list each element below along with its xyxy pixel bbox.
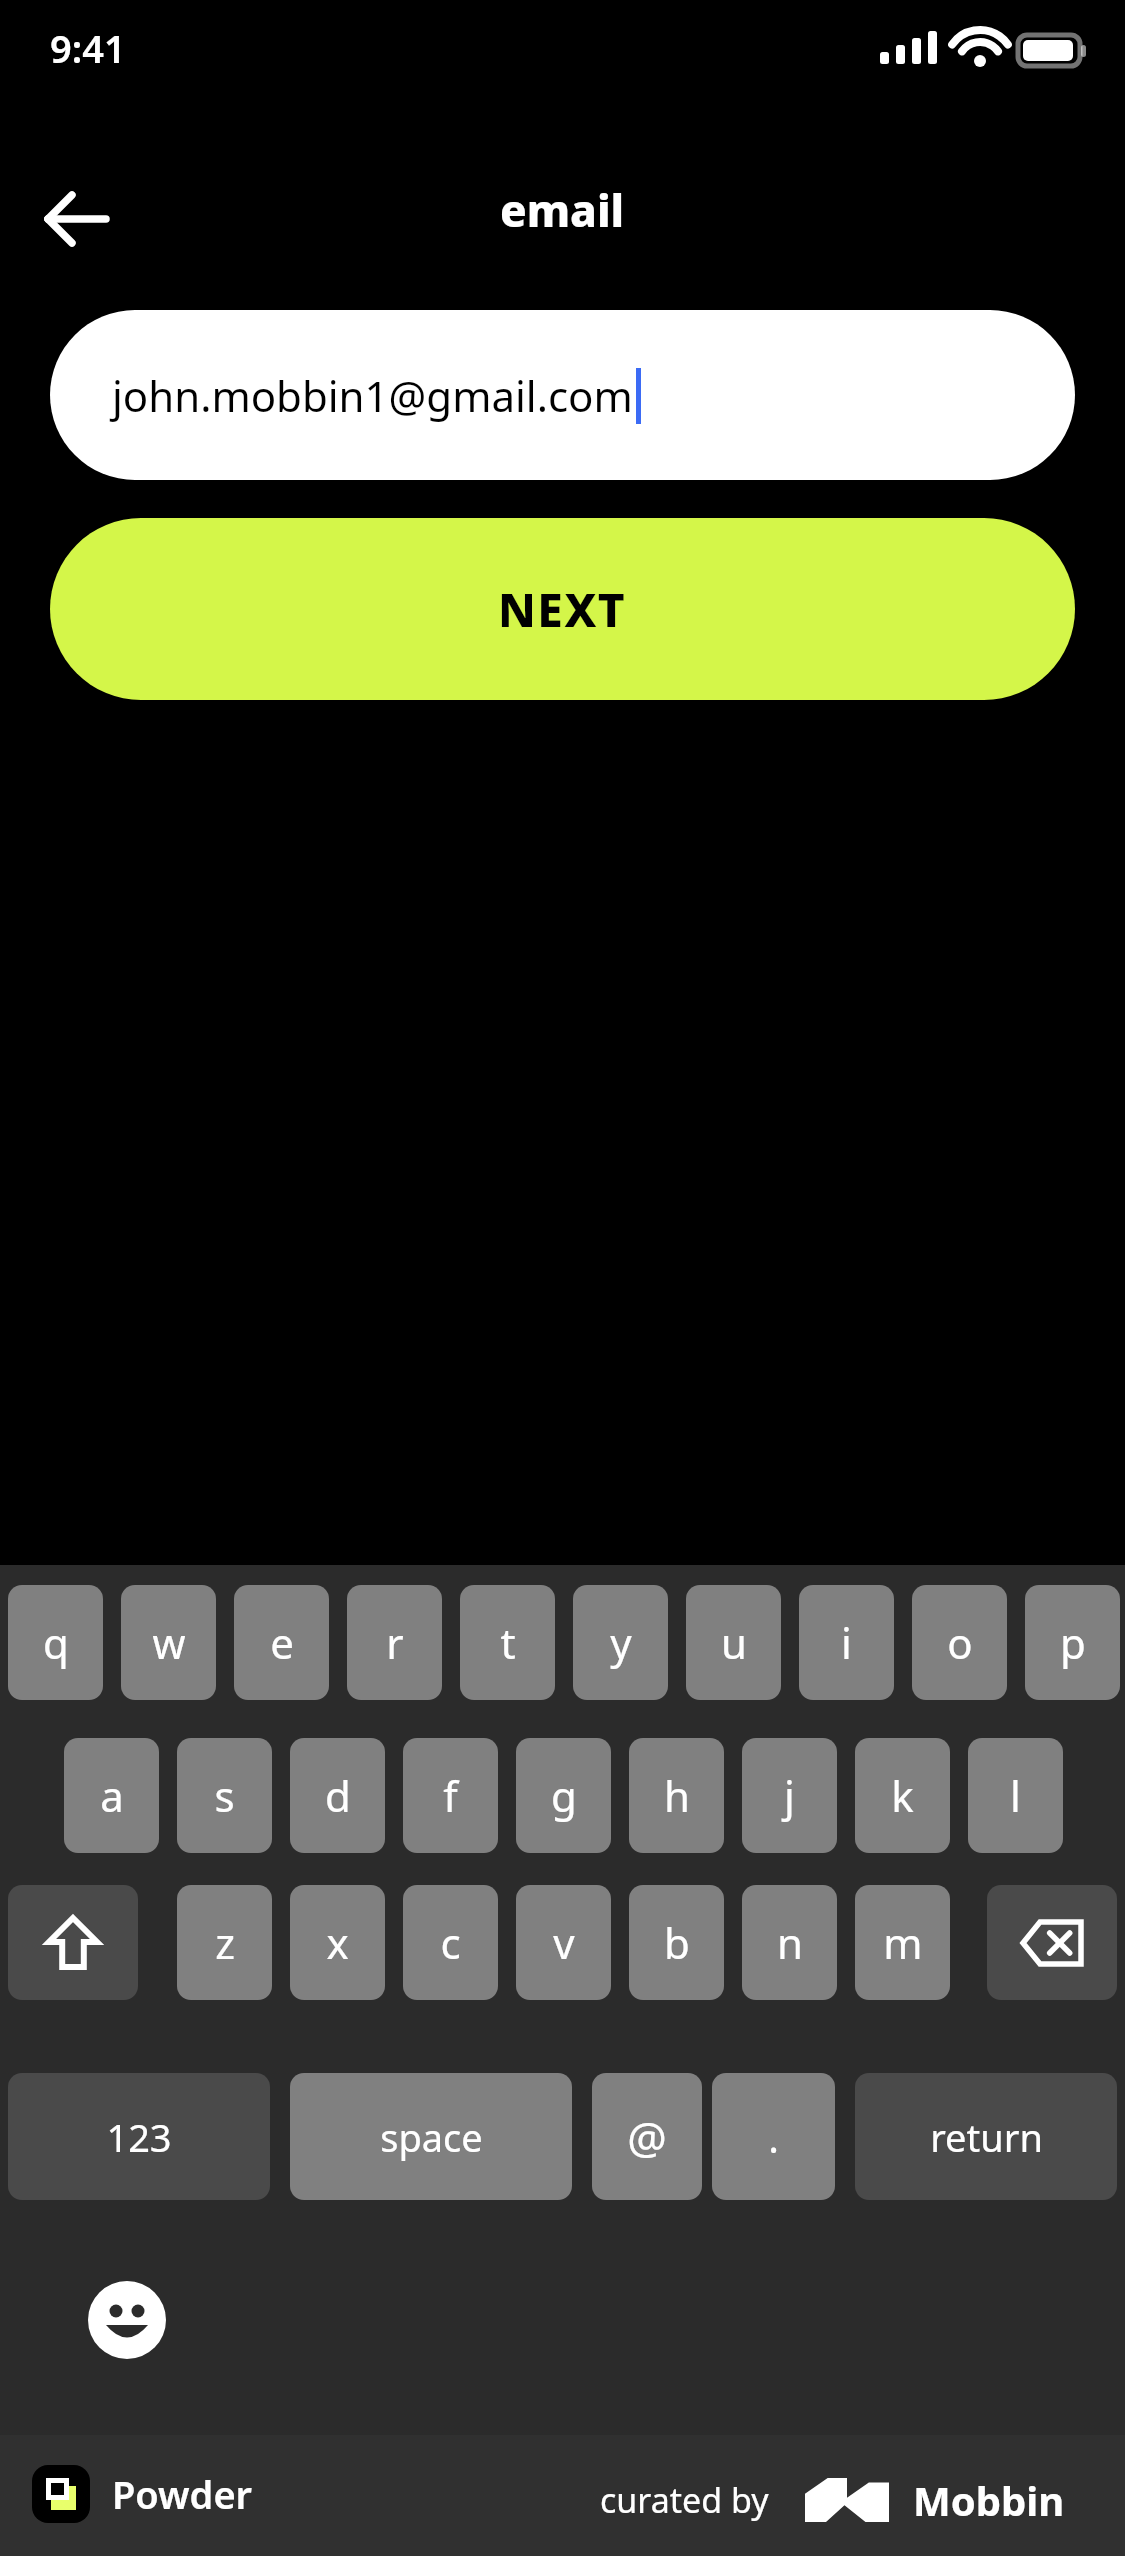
button[interactable]: . xyxy=(712,2073,835,2200)
staticText: Mobbin xyxy=(913,2473,1065,2527)
button[interactable]: s xyxy=(177,1738,272,1853)
staticText: y xyxy=(610,1614,632,1671)
staticText: c xyxy=(440,1914,461,1971)
staticText: return xyxy=(930,2111,1043,2163)
button[interactable]: 123 xyxy=(8,2073,270,2200)
button[interactable]: space xyxy=(290,2073,572,2200)
staticText: b xyxy=(664,1914,690,1971)
button[interactable]: @ xyxy=(592,2073,702,2200)
staticText: @ xyxy=(627,2107,667,2167)
staticText: p xyxy=(1060,1614,1086,1671)
button[interactable]: Shift xyxy=(8,1885,138,2000)
staticText: k xyxy=(891,1767,914,1824)
staticText: NEXT xyxy=(498,578,627,641)
button[interactable]: return xyxy=(855,2073,1117,2200)
button[interactable]: Backspace xyxy=(987,1885,1117,2000)
button[interactable]: x xyxy=(290,1885,385,2000)
button[interactable]: g xyxy=(516,1738,611,1853)
staticText: q xyxy=(43,1614,69,1671)
staticText: w xyxy=(152,1614,186,1671)
staticText: 9:41 xyxy=(50,22,126,74)
button[interactable]: r xyxy=(347,1585,442,1700)
staticText: n xyxy=(777,1914,803,1971)
staticText: t xyxy=(500,1614,516,1671)
button[interactable]: t xyxy=(460,1585,555,1700)
staticText: v xyxy=(553,1914,575,1971)
button[interactable]: y xyxy=(573,1585,668,1700)
staticText: email xyxy=(500,180,625,240)
staticText: x xyxy=(326,1914,349,1971)
button[interactable]: b xyxy=(629,1885,724,2000)
button[interactable]: m xyxy=(855,1885,950,2000)
staticText: l xyxy=(1010,1767,1021,1824)
button[interactable]: a xyxy=(64,1738,159,1853)
button[interactable]: z xyxy=(177,1885,272,2000)
staticText: f xyxy=(443,1767,458,1824)
staticText: john.mobbin1@gmail.com xyxy=(112,367,633,424)
staticText: g xyxy=(551,1767,577,1824)
button[interactable]: i xyxy=(799,1585,894,1700)
staticText: m xyxy=(883,1914,923,1971)
staticText: s xyxy=(214,1767,235,1824)
button[interactable]: l xyxy=(968,1738,1063,1853)
button[interactable]: q xyxy=(8,1585,103,1700)
staticText: Powder xyxy=(112,2468,253,2520)
button[interactable]: n xyxy=(742,1885,837,2000)
staticText: o xyxy=(947,1614,973,1671)
button[interactable]: NEXT xyxy=(50,518,1075,700)
button[interactable]: john.mobbin1@gmail.com xyxy=(50,310,1075,480)
staticText: 123 xyxy=(106,2111,172,2163)
staticText: d xyxy=(325,1767,351,1824)
staticText: j xyxy=(784,1767,795,1824)
staticText: e xyxy=(270,1614,294,1671)
staticText: i xyxy=(841,1614,852,1671)
button[interactable]: Emoji keyboard xyxy=(62,2255,192,2385)
staticText: . xyxy=(768,2110,779,2164)
button[interactable]: h xyxy=(629,1738,724,1853)
staticText: u xyxy=(721,1614,747,1671)
staticText: a xyxy=(100,1767,124,1824)
button[interactable]: u xyxy=(686,1585,781,1700)
button[interactable]: j xyxy=(742,1738,837,1853)
staticText: h xyxy=(664,1767,690,1824)
staticText: r xyxy=(386,1614,404,1671)
staticText: z xyxy=(215,1914,235,1971)
button[interactable]: w xyxy=(121,1585,216,1700)
button[interactable]: Back xyxy=(18,160,136,278)
button[interactable]: f xyxy=(403,1738,498,1853)
staticText: curated by xyxy=(600,2477,769,2523)
button[interactable]: k xyxy=(855,1738,950,1853)
button[interactable]: o xyxy=(912,1585,1007,1700)
button[interactable]: d xyxy=(290,1738,385,1853)
button[interactable]: p xyxy=(1025,1585,1120,1700)
button[interactable]: c xyxy=(403,1885,498,2000)
staticText: space xyxy=(380,2111,483,2163)
button[interactable]: e xyxy=(234,1585,329,1700)
button[interactable]: v xyxy=(516,1885,611,2000)
